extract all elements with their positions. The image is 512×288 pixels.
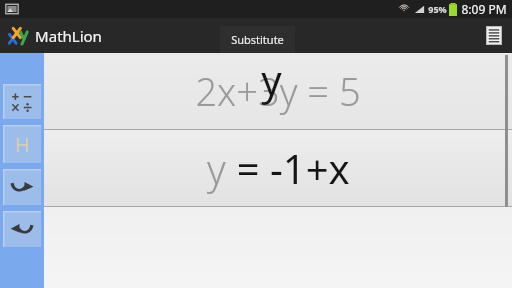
button[interactable]: Tool bbox=[3, 211, 41, 247]
button[interactable]: Tool bbox=[3, 169, 41, 205]
button[interactable]: 2x+3y = 5 bbox=[44, 53, 512, 129]
button[interactable]: MathLion bbox=[8, 26, 102, 46]
button[interactable]: Substitute bbox=[220, 26, 295, 53]
staticText: 95% bbox=[428, 3, 447, 15]
staticText: y bbox=[207, 141, 226, 195]
staticText: MathLion bbox=[35, 26, 102, 46]
button[interactable]: Tool bbox=[3, 84, 41, 119]
button[interactable]: Tool bbox=[3, 125, 41, 163]
staticText: y bbox=[261, 52, 282, 106]
button[interactable]: Menu bbox=[476, 18, 512, 53]
staticText: Substitute bbox=[231, 32, 284, 47]
staticText: = -1+x bbox=[226, 141, 350, 195]
staticText: 2x+3y = 5 bbox=[195, 65, 361, 117]
staticText: H bbox=[15, 131, 30, 158]
staticText: 8:09 PM bbox=[461, 1, 507, 17]
button[interactable]: y bbox=[44, 130, 512, 206]
